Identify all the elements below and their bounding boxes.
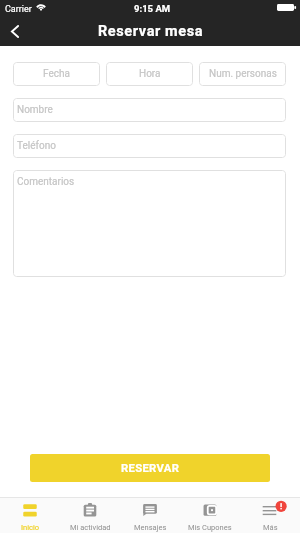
staticText: Mis Cupones xyxy=(188,523,232,532)
staticText: Más xyxy=(263,523,278,532)
button[interactable]: Mi actividad xyxy=(60,497,120,533)
staticText: Mensajes xyxy=(134,523,167,532)
button[interactable]: Inicio xyxy=(0,497,60,533)
button[interactable]: Teléfono xyxy=(13,134,286,158)
staticText: Num. personas xyxy=(209,68,277,80)
staticText: Fecha xyxy=(43,68,70,80)
staticText: Carrier xyxy=(5,4,32,15)
button[interactable]: RESERVAR xyxy=(30,454,270,482)
staticText: Comentarios xyxy=(17,176,75,188)
button[interactable]: Back xyxy=(1,17,28,45)
button[interactable]: Hora xyxy=(106,62,193,86)
staticText: 9:15 AM xyxy=(134,3,171,14)
button[interactable]: Mensajes xyxy=(120,497,180,533)
staticText: RESERVAR xyxy=(121,462,180,475)
button[interactable]: Más xyxy=(240,497,300,533)
staticText: Mi actividad xyxy=(70,523,111,532)
staticText: Hora xyxy=(139,68,161,80)
staticText: Nombre xyxy=(17,104,53,116)
button[interactable]: Mis Cupones xyxy=(180,497,240,533)
button[interactable]: Num. personas xyxy=(199,62,286,86)
staticText: Inicio xyxy=(21,523,40,532)
button[interactable]: Nombre xyxy=(13,98,286,122)
staticText: Reservar mesa xyxy=(98,23,204,40)
staticText: Teléfono xyxy=(17,140,56,152)
button[interactable]: Fecha xyxy=(13,62,100,86)
button[interactable]: Comentarios xyxy=(13,170,286,277)
